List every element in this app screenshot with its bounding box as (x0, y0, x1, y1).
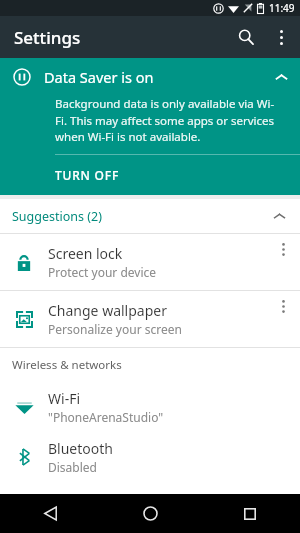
button[interactable]: More options (266, 291, 300, 347)
staticText: Bluetooth (48, 439, 113, 458)
button[interactable]: Back (0, 494, 100, 533)
button[interactable]: Wi-Fi (0, 382, 300, 432)
staticText: Settings (14, 26, 227, 49)
staticText: Suggestions (2) (12, 208, 262, 225)
staticText: Personalize your screen (48, 321, 182, 337)
button[interactable]: Search (227, 18, 265, 56)
button[interactable]: Recent apps (200, 494, 300, 533)
staticText: Protect your device (48, 264, 157, 280)
button[interactable]: Collapse (262, 58, 300, 96)
staticText: Wireless & networks (12, 357, 122, 373)
staticText: Disabled (48, 459, 97, 475)
staticText: Background data is only available via Wi… (55, 96, 280, 144)
button[interactable]: Screen lock (0, 234, 300, 290)
staticText: Wi-Fi (48, 389, 81, 408)
staticText: Change wallpaper (48, 301, 167, 320)
staticText: Screen lock (48, 244, 123, 263)
button[interactable]: Bluetooth (0, 432, 300, 482)
staticText: "PhoneArenaStudio" (48, 409, 164, 425)
staticText: Data Saver is on (44, 67, 262, 87)
staticText: 11:49 (269, 1, 295, 15)
button[interactable]: More options (265, 21, 297, 53)
staticText: TURN OFF (55, 167, 120, 183)
button[interactable]: TURN OFF (43, 155, 132, 195)
button[interactable]: Change wallpaper (0, 291, 300, 347)
button[interactable]: More options (266, 234, 300, 290)
button[interactable]: Home (100, 494, 200, 533)
button[interactable]: Suggestions (2) (0, 199, 300, 233)
